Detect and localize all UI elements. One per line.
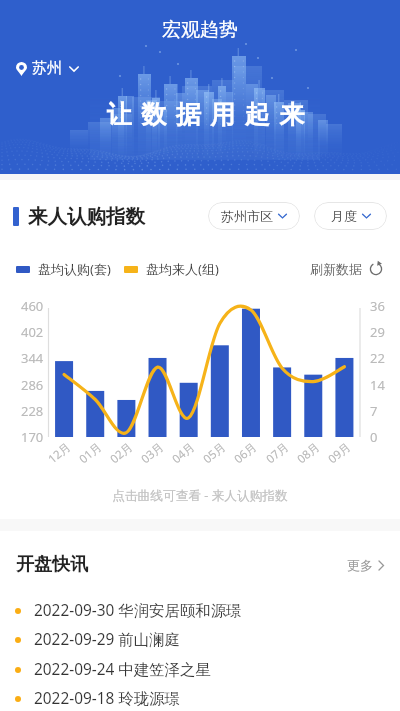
button[interactable]: 月度 [314, 202, 387, 230]
staticText: 刷新数据 [310, 261, 362, 277]
staticText: 02月 [107, 439, 136, 467]
staticText: 03月 [138, 439, 167, 467]
staticText: 苏州 [32, 59, 62, 78]
staticText: 12月 [45, 439, 74, 467]
staticText: 2022-09-24 中建笠泽之星 [34, 659, 211, 680]
button[interactable]: 2022-09-30 华润安居颐和源璟 [0, 596, 400, 625]
staticText: 2022-09-18 玲珑源璟 [34, 688, 180, 709]
staticText: 29 [370, 323, 385, 341]
other: Refresh data [369, 262, 383, 276]
staticText: 06月 [231, 439, 260, 467]
button[interactable]: 苏州市区 [208, 202, 300, 230]
button[interactable]: 2022-09-18 玲珑源璟 [0, 684, 400, 711]
staticText: 08月 [294, 439, 323, 467]
staticText: 月度 [331, 208, 357, 224]
staticText: 盘均来人(组) [146, 260, 219, 278]
staticText: 228 [21, 402, 44, 420]
staticText: 2022-09-29 前山澜庭 [34, 629, 180, 650]
staticText: 14 [370, 376, 385, 394]
staticText: 0 [370, 428, 378, 446]
staticText: 7 [370, 402, 378, 420]
staticText: 09月 [325, 439, 354, 467]
staticText: 苏州市区 [221, 208, 273, 224]
staticText: 01月 [76, 439, 105, 467]
button[interactable]: 刷新数据 [308, 259, 385, 279]
staticText: 来人认购指数 [28, 204, 145, 229]
staticText: 402 [21, 323, 44, 341]
staticText: 170 [21, 428, 44, 446]
staticText: 让数据用起来 [102, 99, 309, 130]
staticText: 开盘快讯 [16, 553, 88, 576]
staticText: 点击曲线可查看 - 来人认购指数 [0, 486, 400, 503]
staticText: 344 [21, 349, 44, 367]
staticText: 286 [21, 376, 44, 394]
staticText: 36 [370, 297, 385, 315]
staticText: 2022-09-30 华润安居颐和源璟 [34, 600, 242, 621]
staticText: 宏观趋势 [162, 18, 238, 42]
staticText: 盘均认购(套) [38, 260, 111, 278]
staticText: 更多 [347, 557, 373, 573]
button[interactable]: 2022-09-29 前山澜庭 [0, 625, 400, 654]
button[interactable]: 苏州 [14, 57, 81, 80]
staticText: 05月 [200, 439, 229, 467]
button[interactable]: 更多 [345, 555, 387, 575]
button[interactable]: 2022-09-24 中建笠泽之星 [0, 655, 400, 684]
staticText: 04月 [169, 439, 198, 467]
staticText: 22 [370, 349, 385, 367]
staticText: 07月 [263, 439, 292, 467]
staticText: 460 [21, 297, 44, 315]
